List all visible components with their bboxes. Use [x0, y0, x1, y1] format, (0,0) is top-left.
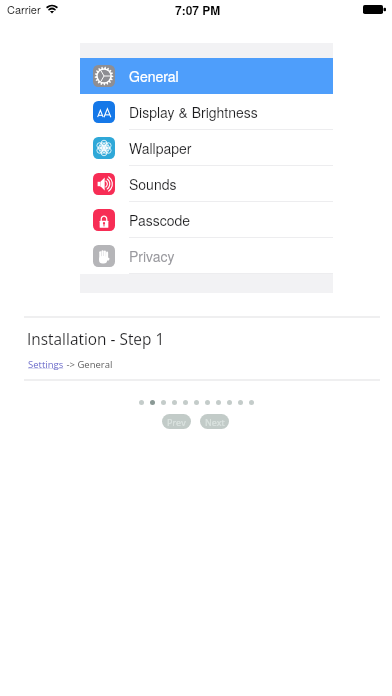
- staticText: Passcode: [129, 210, 191, 230]
- button[interactable]: Step 1: [139, 400, 144, 405]
- button[interactable]: Step 10: [238, 400, 243, 405]
- button[interactable]: Wallpaper: [80, 130, 333, 166]
- button[interactable]: Step 5: [183, 400, 188, 405]
- button[interactable]: Step 2: [150, 400, 155, 405]
- button[interactable]: Step 4: [172, 400, 177, 405]
- button[interactable]: Sounds: [80, 166, 333, 202]
- staticText: -> General: [64, 358, 113, 371]
- button[interactable]: Step 9: [227, 400, 232, 405]
- staticText: Privacy: [129, 246, 175, 266]
- staticText: General: [129, 66, 179, 86]
- button[interactable]: Step 3: [161, 400, 166, 405]
- staticText: Carrier: [7, 1, 41, 17]
- button[interactable]: Settings: [28, 358, 64, 371]
- staticText: 7:07 PM: [175, 1, 221, 18]
- button[interactable]: Step 7: [205, 400, 210, 405]
- staticText: Next: [205, 416, 225, 428]
- staticText: Prev: [167, 416, 186, 428]
- button[interactable]: Step 6: [194, 400, 199, 405]
- staticText: Sounds: [129, 174, 177, 194]
- staticText: Installation - Step 1: [27, 329, 165, 350]
- button[interactable]: Step 8: [216, 400, 221, 405]
- button[interactable]: Prev: [162, 414, 191, 429]
- button[interactable]: Passcode: [80, 202, 333, 238]
- staticText: Wallpaper: [129, 138, 192, 158]
- button[interactable]: Step 11: [249, 400, 254, 405]
- staticText: Display & Brightness: [129, 102, 258, 122]
- button[interactable]: Next: [200, 414, 229, 429]
- button[interactable]: Display & Brightness: [80, 94, 333, 130]
- button[interactable]: Privacy: [80, 238, 333, 274]
- button[interactable]: General: [80, 58, 333, 94]
